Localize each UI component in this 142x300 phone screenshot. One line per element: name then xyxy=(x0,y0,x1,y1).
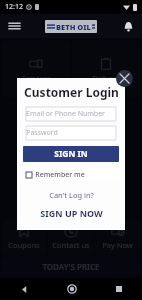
button[interactable]: SIGN IN xyxy=(23,146,119,162)
staticText: SIGN IN xyxy=(54,148,88,160)
button[interactable]: Close xyxy=(116,70,133,87)
button[interactable]: Services xyxy=(2,42,70,98)
staticText: 12:12 xyxy=(5,2,23,12)
staticText: SIGN UP NOW xyxy=(40,207,103,219)
button[interactable]: Remember me xyxy=(23,168,119,181)
button[interactable]: Open navigation menu xyxy=(4,16,24,36)
button[interactable]: Back xyxy=(0,278,48,300)
staticText: Customer Login xyxy=(24,84,119,100)
button[interactable]: Home xyxy=(48,278,95,300)
button[interactable]: Email or Phone Number xyxy=(23,107,119,121)
button[interactable]: Contact us xyxy=(48,220,93,254)
button[interactable]: Delivery xyxy=(72,42,140,98)
button[interactable]: BETH OIL xyxy=(45,20,97,33)
staticText: Contact us xyxy=(52,240,90,250)
staticText: Can't Log in? xyxy=(49,190,94,200)
staticText: Coupons xyxy=(8,240,40,250)
staticText: Pay Now xyxy=(102,240,133,250)
button[interactable]: SIGN UP NOW xyxy=(39,206,104,220)
staticText: TODAY'S PRICE xyxy=(42,261,100,272)
button[interactable]: TODAY'S PRICE xyxy=(2,258,140,275)
staticText: Services xyxy=(22,73,51,83)
staticText: Email or Phone Number xyxy=(26,109,105,119)
button[interactable]: Pay Now xyxy=(95,220,140,254)
button[interactable]: Recent apps xyxy=(95,278,142,300)
staticText: BETH OIL xyxy=(56,22,91,32)
staticText: Password xyxy=(26,128,58,138)
staticText: Remember me xyxy=(35,170,85,180)
button[interactable]: Notifications xyxy=(118,16,138,36)
button[interactable]: Coupons xyxy=(2,220,46,254)
staticText: Delivery xyxy=(92,73,121,83)
button[interactable]: Can't Log in? xyxy=(48,189,95,201)
button[interactable]: Password xyxy=(23,126,119,140)
